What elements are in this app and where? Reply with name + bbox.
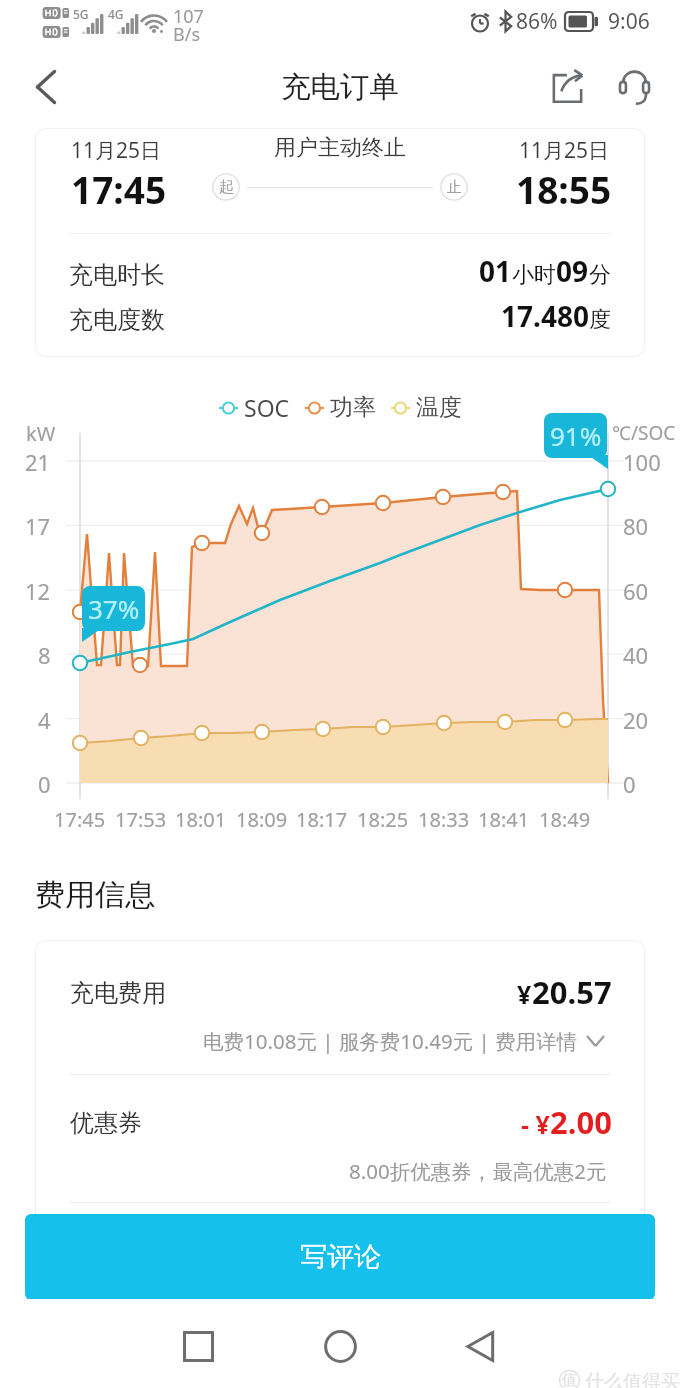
staticText: B/s [173, 22, 201, 47]
staticText: 17.480 [501, 297, 589, 335]
staticText: 什么值得买 [585, 1370, 680, 1388]
staticText: 18:33 [418, 806, 470, 833]
button[interactable]: Home [310, 1316, 370, 1376]
staticText: 01 [479, 252, 512, 290]
staticText: 2.00 [550, 1101, 612, 1143]
staticText: 电费10.08元 | 服务费10.49元 | 费用详情 [203, 1027, 578, 1055]
staticText: 20.57 [532, 971, 612, 1013]
staticText: 18:49 [539, 806, 591, 833]
staticText: 8 [38, 640, 51, 670]
staticText: 值 [562, 1371, 577, 1388]
staticText: 止 [447, 178, 462, 197]
staticText: 充电费用 [70, 978, 166, 1008]
staticText: ¥ [517, 977, 532, 1011]
staticText: 100 [623, 447, 661, 477]
staticText: 18:01 [175, 806, 227, 833]
staticText: - ¥ [521, 1107, 550, 1141]
staticText: 17 [25, 511, 51, 541]
staticText: 18:25 [357, 806, 409, 833]
staticText: 11月25日 [519, 136, 610, 165]
staticText: 优惠券 [70, 1108, 142, 1138]
staticText: 40 [623, 640, 649, 670]
staticText: 9:06 [608, 7, 650, 36]
staticText: 107 [173, 4, 204, 29]
staticText: 18:09 [236, 806, 288, 833]
staticText: 21 [25, 447, 51, 477]
staticText: 09 [556, 252, 589, 290]
staticText: 60 [623, 576, 649, 606]
staticText: 充电订单 [281, 69, 399, 106]
button[interactable]: 写评论 [25, 1214, 655, 1300]
staticText: 分 [589, 261, 611, 289]
staticText: 小时 [512, 261, 556, 289]
staticText: 写评论 [300, 1240, 381, 1274]
staticText: 11月25日 [71, 136, 162, 165]
staticText: 8.00折优惠券，最高优惠2元 [349, 1157, 607, 1185]
staticText: 86% [516, 7, 558, 36]
staticText: 17:45 [71, 164, 167, 214]
button[interactable]: Back [451, 1316, 511, 1376]
staticText: 17:45 [54, 806, 106, 833]
staticText: 4 [38, 705, 51, 735]
staticText: 充电度数 [69, 305, 165, 335]
button[interactable]: Share [537, 57, 597, 117]
staticText: 0 [623, 769, 636, 799]
button[interactable]: Back [0, 46, 92, 128]
staticText: 充电时长 [69, 260, 165, 290]
staticText: 80 [623, 511, 649, 541]
staticText: 18:17 [296, 806, 348, 833]
staticText: 度 [589, 306, 611, 334]
staticText: 91% [550, 418, 602, 453]
staticText: 5G [73, 6, 89, 22]
staticText: 12 [25, 576, 51, 606]
staticText: 温度 [416, 393, 462, 422]
staticText: 18:41 [478, 806, 530, 833]
staticText: 4G [108, 6, 124, 22]
staticText: 37% [88, 591, 140, 626]
staticText: 20 [623, 705, 649, 735]
staticText: 费用信息 [35, 876, 155, 914]
button[interactable]: Recents [168, 1316, 228, 1376]
button[interactable]: Customer service [604, 57, 664, 117]
staticText: 17:53 [115, 806, 167, 833]
staticText: 功率 [330, 393, 376, 422]
staticText: 18:55 [516, 164, 612, 214]
staticText: SOC [244, 392, 290, 423]
staticText: 0 [38, 769, 51, 799]
staticText: kW [26, 420, 56, 447]
staticText: 起 [219, 178, 234, 197]
staticText: ℃/SOC [612, 420, 676, 446]
staticText: 用户主动终止 [274, 134, 406, 162]
